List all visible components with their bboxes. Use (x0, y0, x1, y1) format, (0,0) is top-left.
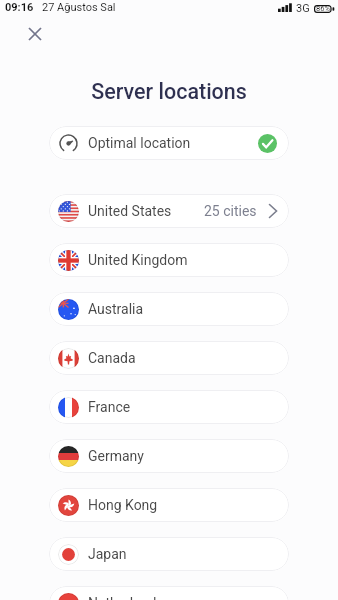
button[interactable]: Hong Kong (49, 488, 289, 522)
staticText: 09:16 (5, 1, 34, 14)
staticText: Germany (88, 448, 144, 464)
button[interactable]: Canada (49, 341, 289, 375)
button[interactable]: Optimal location (49, 126, 289, 160)
staticText: Netherlands (88, 595, 164, 600)
staticText: 25 cities (204, 203, 257, 219)
button[interactable]: Netherlands (49, 586, 289, 600)
staticText: Australia (88, 301, 144, 317)
button[interactable]: Germany (49, 439, 289, 473)
staticText: 86% (316, 4, 330, 13)
staticText: Optimal location (88, 135, 191, 151)
staticText: Hong Kong (88, 497, 158, 513)
button[interactable]: United Kingdom (49, 243, 289, 277)
button[interactable]: Close (22, 21, 48, 47)
staticText: France (88, 399, 131, 415)
staticText: United Kingdom (88, 252, 188, 268)
staticText: Canada (88, 350, 136, 366)
button[interactable]: Japan (49, 537, 289, 571)
button[interactable]: United States (49, 194, 289, 228)
staticText: Server locations (0, 79, 338, 104)
staticText: Japan (88, 546, 127, 562)
button[interactable]: France (49, 390, 289, 424)
button[interactable]: Australia (49, 292, 289, 326)
staticText: United States (88, 203, 172, 219)
staticText: 27 Ağustos Sal (42, 1, 116, 14)
staticText: 3G (296, 2, 310, 15)
